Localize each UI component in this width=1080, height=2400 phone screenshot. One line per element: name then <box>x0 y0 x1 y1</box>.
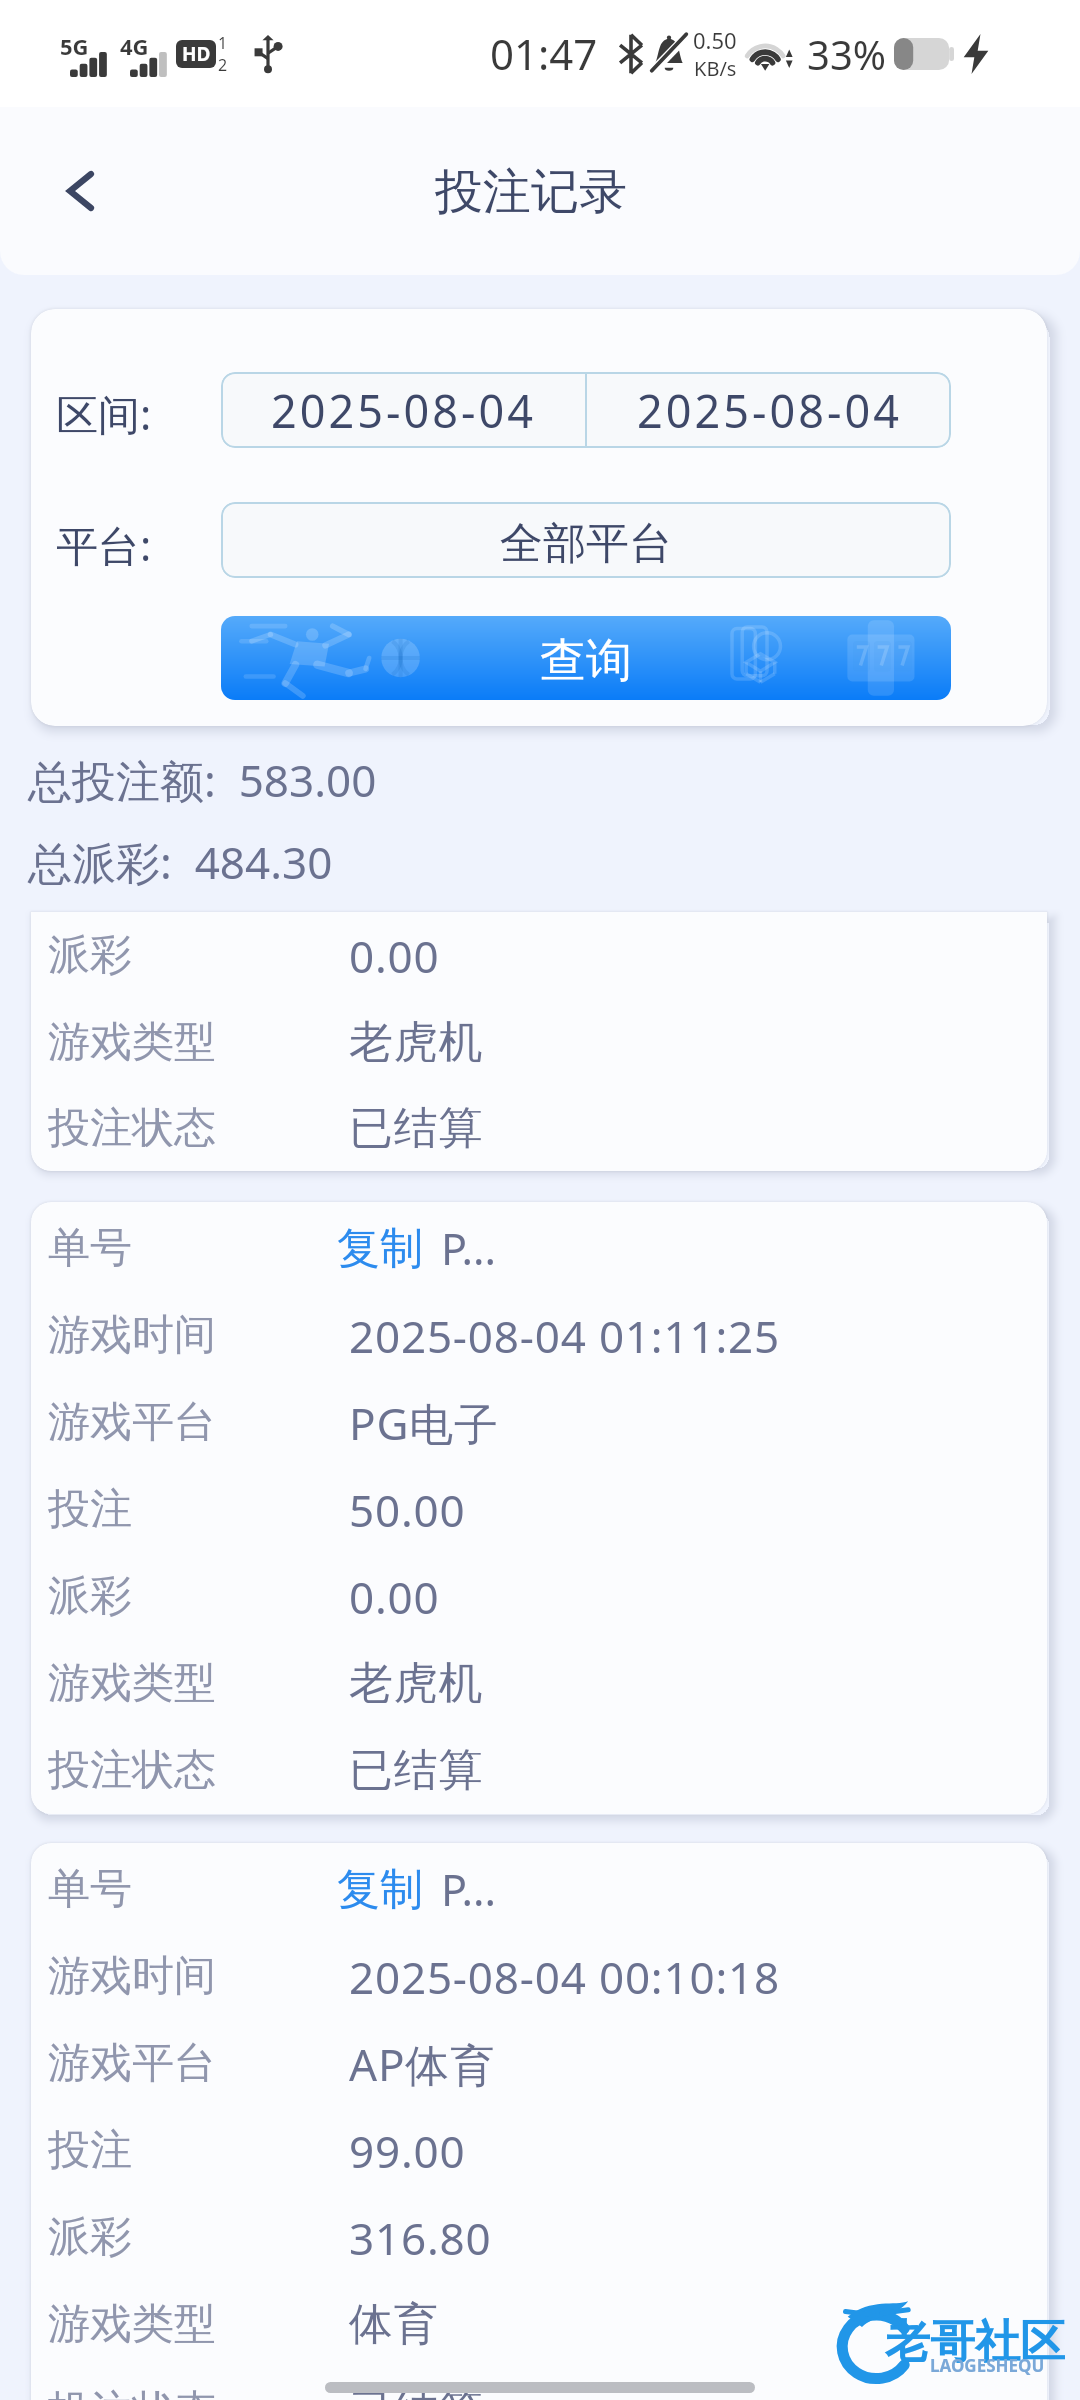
button[interactable]: 投注 <box>31 1466 1047 1553</box>
staticText: 游戏平台 <box>48 1396 216 1449</box>
staticText: 4G <box>120 31 149 61</box>
button[interactable]: 派彩 <box>31 912 1047 999</box>
staticText: 1 <box>218 32 228 54</box>
button[interactable]: 2025-08-04 <box>587 372 951 448</box>
staticText: 投注记录 <box>435 162 627 222</box>
staticText: 游戏类型 <box>48 1657 216 1710</box>
staticText: 0.50 <box>693 25 737 55</box>
staticText: 区间: <box>56 385 152 442</box>
staticText: 已结算 <box>349 1101 484 1156</box>
staticText: 总投注额: 583.00 <box>28 750 377 810</box>
button[interactable]: 游戏平台 <box>31 2020 1047 2107</box>
button[interactable]: 投注 <box>31 2107 1047 2194</box>
staticText: 单号 <box>48 1222 132 1275</box>
button[interactable]: 复制 <box>337 1863 423 1917</box>
staticText: 2025-08-04 <box>271 380 536 441</box>
staticText: 游戏类型 <box>48 1016 216 1069</box>
staticText: 投注状态 <box>48 2385 216 2400</box>
button[interactable]: 全部平台 <box>221 502 951 578</box>
staticText: 游戏类型 <box>48 2298 216 2351</box>
staticText: 0.00 <box>349 1567 440 1627</box>
button[interactable]: 查询 <box>221 616 951 700</box>
staticText: 投注状态 <box>48 1744 216 1797</box>
staticText: 平台: <box>56 516 152 573</box>
staticText: 投注状态 <box>48 1102 216 1155</box>
staticText: P... <box>441 1860 496 1919</box>
button[interactable]: 复制 <box>337 1222 423 1276</box>
button[interactable]: 投注状态 <box>31 1727 1047 1814</box>
staticText: KB/s <box>694 55 737 82</box>
button[interactable]: 单号 <box>31 1205 1047 1292</box>
staticText: 50.00 <box>349 1480 466 1540</box>
staticText: 已结算 <box>349 1743 484 1798</box>
staticText: 派彩 <box>48 929 132 982</box>
staticText: 投注 <box>48 2124 132 2177</box>
staticText: 游戏时间 <box>48 1950 216 2003</box>
staticText: 2025-08-04 00:10:18 <box>349 1947 780 2007</box>
staticText: P... <box>441 1219 496 1278</box>
button[interactable]: 游戏时间 <box>31 1933 1047 2020</box>
staticText: 316.80 <box>349 2208 492 2268</box>
staticText: 99.00 <box>349 2121 466 2181</box>
staticText: 派彩 <box>48 1570 132 1623</box>
button[interactable]: Back <box>38 149 122 233</box>
staticText: 老虎机 <box>349 1656 484 1711</box>
staticText: 2025-08-04 01:11:25 <box>349 1306 780 1366</box>
staticText: 总派彩: 484.30 <box>28 832 333 892</box>
staticText: 派彩 <box>48 2211 132 2264</box>
button[interactable]: 投注状态 <box>31 1086 1047 1171</box>
staticText: 全部平台 <box>500 517 672 571</box>
button[interactable]: 单号 <box>31 1846 1047 1933</box>
staticText: 0.00 <box>349 926 440 986</box>
staticText: 游戏时间 <box>48 1309 216 1362</box>
staticText: AP体育 <box>349 2034 495 2094</box>
staticText: 33% <box>807 27 886 81</box>
button[interactable]: 游戏类型 <box>31 1640 1047 1727</box>
staticText: 2025-08-04 <box>637 380 902 441</box>
staticText: 单号 <box>48 1863 132 1916</box>
button[interactable]: 游戏类型 <box>31 999 1047 1086</box>
button[interactable]: 派彩 <box>31 2194 1047 2281</box>
staticText: 游戏平台 <box>48 2037 216 2090</box>
staticText: 老虎机 <box>349 1015 484 1070</box>
button[interactable]: 游戏平台 <box>31 1379 1047 1466</box>
button[interactable]: 游戏类型 <box>31 2281 1047 2368</box>
staticText: PG电子 <box>349 1393 499 1453</box>
staticText: 投注 <box>48 1483 132 1536</box>
staticText: HD <box>182 41 211 67</box>
staticText: LAOGESHEQU <box>930 2354 1045 2377</box>
staticText: 5G <box>60 31 89 61</box>
button[interactable]: 游戏时间 <box>31 1292 1047 1379</box>
button[interactable]: 派彩 <box>31 1553 1047 1640</box>
button[interactable]: 2025-08-04 <box>221 372 585 448</box>
staticText: 老哥社区 <box>885 2314 1065 2371</box>
staticText: 2 <box>218 54 228 76</box>
staticText: 已结算 <box>349 2384 484 2400</box>
staticText: 查询 <box>540 632 632 690</box>
staticText: 01:47 <box>490 25 598 82</box>
button[interactable]: 投注状态 <box>31 2368 1047 2400</box>
staticText: 体育 <box>349 2297 439 2352</box>
